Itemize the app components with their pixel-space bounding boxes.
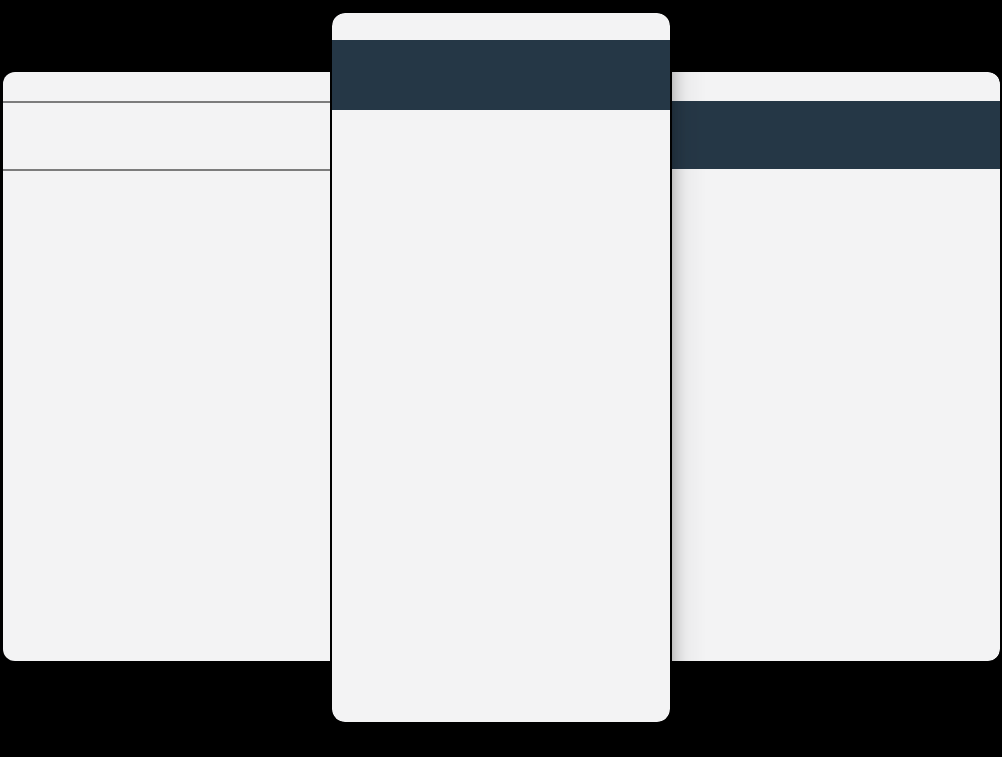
button[interactable]: Next screen preview xyxy=(672,72,1000,661)
button[interactable]: Previous screen preview xyxy=(3,72,330,661)
button[interactable]: Current screen xyxy=(332,13,670,722)
